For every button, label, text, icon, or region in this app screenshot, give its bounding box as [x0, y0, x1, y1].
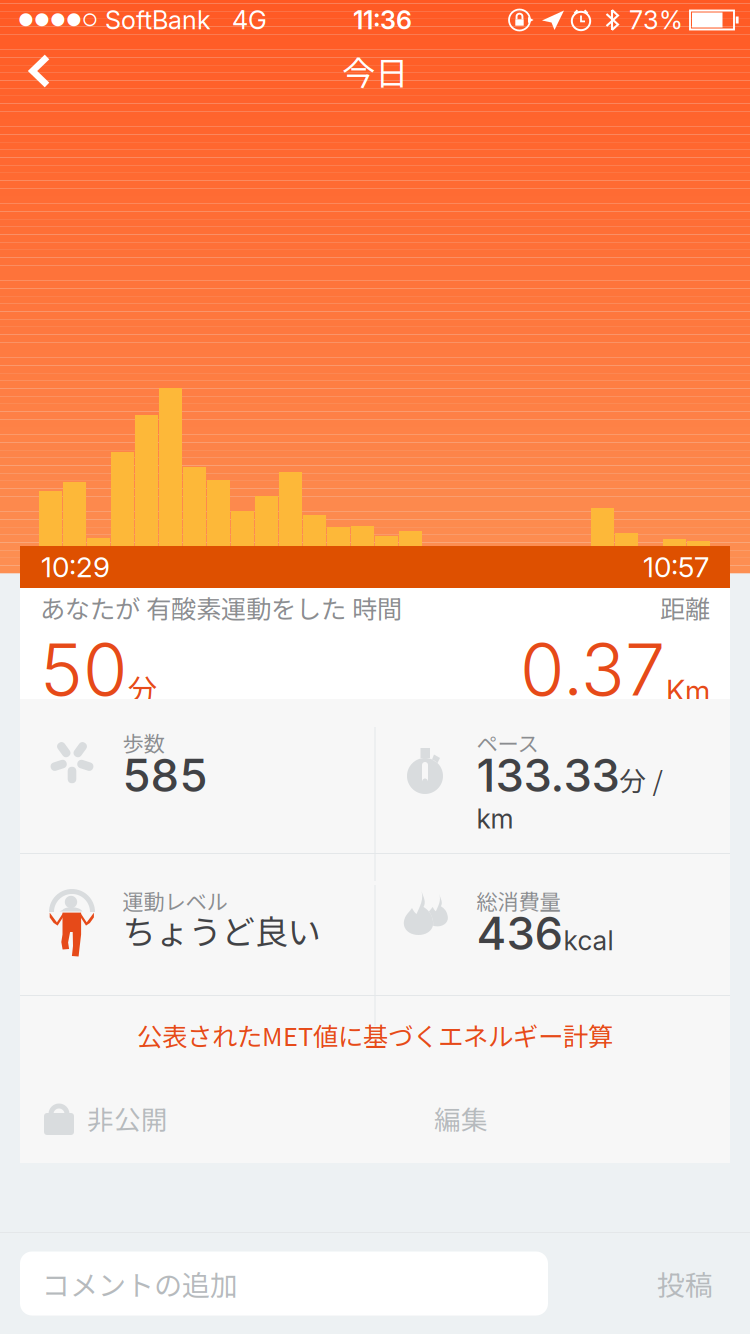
- staticText: 分 /: [619, 760, 662, 799]
- staticText: 今日: [342, 47, 408, 95]
- staticText: 非公開: [87, 1099, 168, 1137]
- button[interactable]: 投稿: [634, 1251, 736, 1315]
- staticText: 0.37: [520, 626, 665, 713]
- button[interactable]: Back: [0, 40, 71, 102]
- staticText: 436: [476, 906, 563, 961]
- staticText: 10:29: [41, 550, 110, 584]
- staticText: ●●●●○: [18, 9, 98, 30]
- staticText: 10:57: [643, 550, 709, 584]
- staticText: 4G: [211, 5, 267, 35]
- staticText: Km: [666, 673, 710, 709]
- staticText: 11:36: [353, 5, 412, 35]
- staticText: 50: [40, 626, 127, 713]
- staticText: ちょうど良い: [122, 906, 320, 954]
- staticText: 73%: [629, 5, 683, 35]
- staticText: 運動レベル: [122, 885, 227, 916]
- staticText: 分: [128, 666, 157, 709]
- staticText: 歩数: [122, 727, 164, 758]
- button[interactable]: 編集: [406, 1074, 516, 1162]
- staticText: 585: [122, 748, 207, 803]
- staticText: 総消費量: [476, 885, 560, 916]
- staticText: 投稿: [657, 1263, 713, 1304]
- staticText: コメントの追加: [42, 1263, 238, 1304]
- staticText: あなたが 有酸素運動をした 時間: [40, 589, 402, 626]
- staticText: kcal: [563, 924, 613, 957]
- staticText: 133.33: [476, 748, 619, 803]
- staticText: 公表されたMET値に基づくエネルギー計算: [137, 1017, 613, 1053]
- staticText: km: [476, 803, 513, 835]
- staticText: ペース: [476, 727, 538, 758]
- staticText: 編集: [434, 1099, 488, 1137]
- staticText: 距離: [660, 589, 710, 626]
- button[interactable]: コメントの追加: [20, 1251, 548, 1315]
- button[interactable]: 非公開: [20, 1074, 192, 1162]
- staticText: SoftBank: [98, 5, 211, 35]
